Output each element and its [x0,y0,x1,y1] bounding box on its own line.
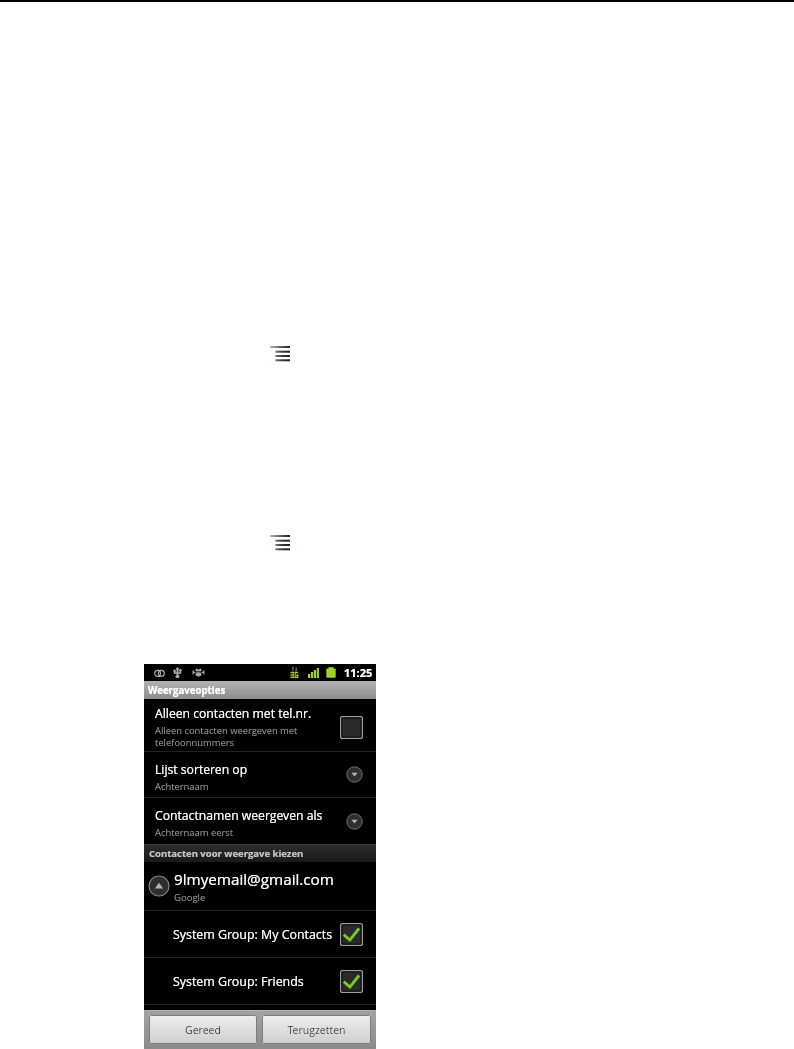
button[interactable]: Gereed [149,1015,257,1044]
button[interactable]: Selectievakje System Group: Friends [340,970,363,993]
staticText: Google [174,891,206,904]
button[interactable]: Alleen contacten met tel.nr. [144,699,376,751]
staticText: Achternaam [155,780,209,793]
staticText: Alleen contacten met tel.nr. [155,705,312,722]
button[interactable]: Open keuzelijst [346,813,363,830]
staticText: 9lmyemail@gmail.com [174,869,334,890]
button[interactable]: System Group: My Contacts [144,911,376,957]
staticText: System Group: My Contacts [173,926,340,943]
button[interactable]: System Group: Friends [144,958,376,1004]
staticText: Contactnamen weergeven als [155,807,323,824]
button[interactable]: Selectievakje System Group: My Contacts [340,923,363,946]
staticText: Terugzetten [287,1023,346,1037]
staticText: Contacten voor weergave kiezen [149,847,304,860]
staticText: Weergaveopties [148,684,226,697]
staticText: Achternaam eerst [155,826,234,839]
staticText: 11:25 [344,665,373,680]
staticText: Alleen contacten weergeven met telefoonn… [155,724,298,749]
button[interactable]: Terugzetten [262,1015,371,1044]
staticText: Gereed [185,1023,221,1037]
button[interactable]: Contactnamen weergeven als [144,798,376,844]
button[interactable]: Lijst sorteren op [144,752,376,797]
button[interactable]: Open keuzelijst [346,766,363,783]
staticText: Lijst sorteren op [155,761,248,778]
staticText: System Group: Friends [173,973,340,990]
button[interactable]: 9lmyemail@gmail.com [144,862,376,910]
button[interactable]: Alleen contacten met telefoonnummer [340,716,363,739]
